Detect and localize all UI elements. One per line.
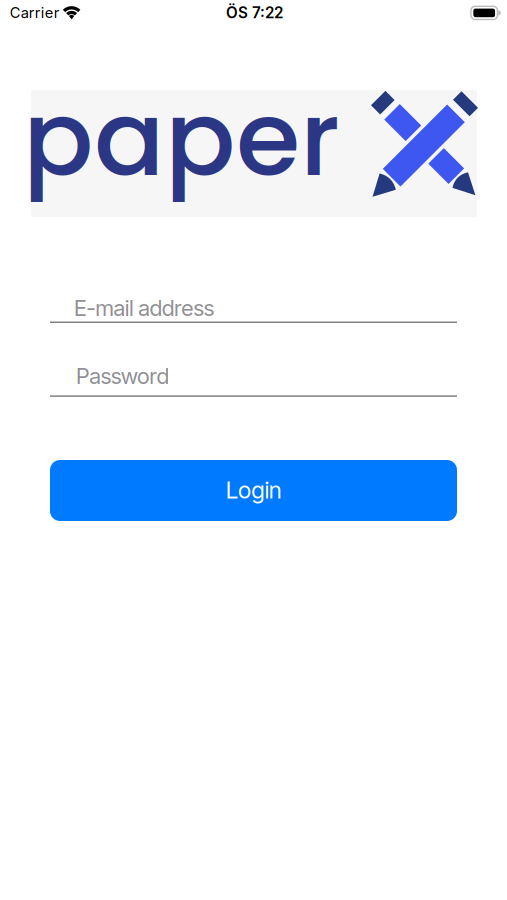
button[interactable]: Login (50, 460, 457, 521)
staticText: E-mail address (74, 295, 214, 321)
staticText: Login (226, 476, 281, 504)
staticText: paper (23, 66, 340, 211)
button[interactable]: E-mail address (50, 294, 457, 323)
button[interactable]: Password (50, 362, 457, 396)
staticText: Carrier (10, 4, 60, 21)
staticText: ÖS 7:22 (226, 4, 283, 22)
staticText: Password (76, 363, 169, 389)
